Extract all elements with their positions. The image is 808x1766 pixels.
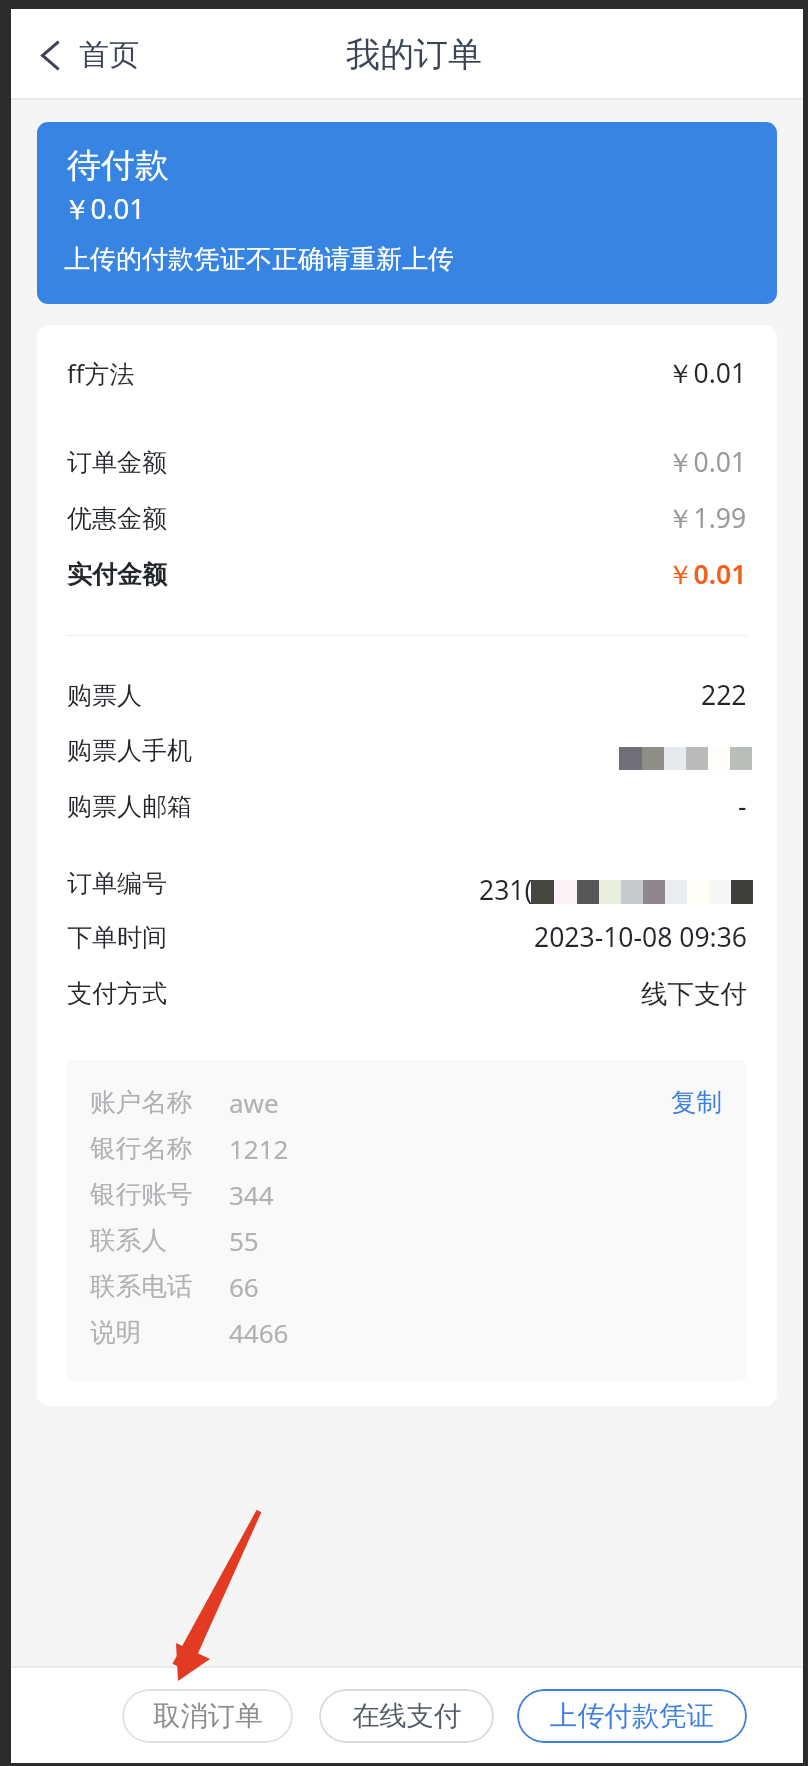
button[interactable]: 取消订单: [122, 1689, 293, 1743]
staticText: ￥1.99: [667, 500, 747, 536]
button[interactable]: 上传付款凭证: [517, 1689, 747, 1743]
staticText: 线下支付: [641, 977, 747, 1010]
staticText: 联系电话: [90, 1270, 193, 1302]
staticText: ￥0.01: [63, 190, 146, 228]
staticText: ￥0.01: [667, 355, 747, 391]
staticText: 订单编号: [67, 868, 167, 899]
staticText: ￥0.01: [667, 556, 747, 592]
staticText: 4466: [229, 1315, 289, 1350]
button[interactable]: 复制: [671, 1086, 723, 1118]
staticText: 2023-10-08 09:36: [534, 919, 747, 955]
staticText: 上传的付款凭证不正确请重新上传: [64, 243, 454, 276]
staticText: awe: [229, 1085, 279, 1120]
staticText: 在线支付: [352, 1699, 462, 1733]
staticText: 联系人: [90, 1224, 167, 1256]
staticText: 银行账号: [90, 1178, 193, 1210]
staticText: 1212: [229, 1131, 289, 1166]
button[interactable]: 在线支付: [319, 1689, 494, 1743]
staticText: ff方法: [67, 356, 135, 390]
button[interactable]: 待付款: [37, 122, 777, 304]
staticText: 66: [229, 1269, 259, 1304]
staticText: 首页: [79, 36, 139, 74]
staticText: 待付款: [67, 144, 169, 187]
staticText: 222: [701, 677, 747, 713]
staticText: 复制: [671, 1086, 723, 1118]
staticText: -: [738, 788, 747, 824]
staticText: 购票人邮箱: [67, 791, 192, 822]
staticText: 优惠金额: [67, 503, 167, 534]
staticText: 实付金额: [67, 559, 167, 590]
staticText: 344: [229, 1177, 274, 1212]
staticText: 说明: [90, 1316, 142, 1348]
staticText: 55: [229, 1223, 259, 1258]
staticText: 银行名称: [90, 1132, 193, 1164]
staticText: 购票人手机: [67, 735, 192, 766]
staticText: ￥0.01: [667, 444, 747, 480]
staticText: 231(: [479, 872, 533, 908]
button[interactable]: 返回首页: [41, 36, 139, 74]
staticText: 购票人: [67, 680, 142, 711]
staticText: 上传付款凭证: [550, 1699, 714, 1733]
staticText: 下单时间: [67, 922, 167, 953]
staticText: 支付方式: [67, 978, 167, 1009]
staticText: 账户名称: [90, 1086, 193, 1118]
staticText: 取消订单: [153, 1699, 263, 1733]
staticText: 订单金额: [67, 447, 167, 478]
staticText: 我的订单: [346, 33, 482, 76]
